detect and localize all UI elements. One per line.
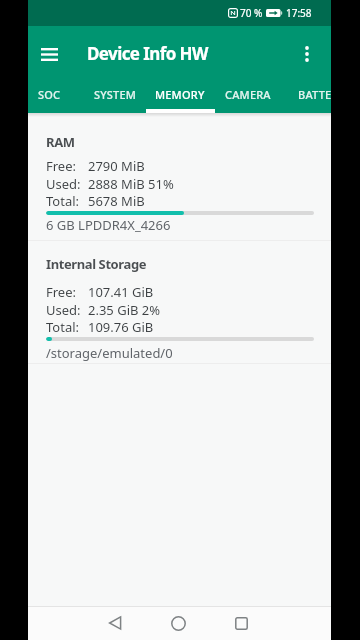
staticText: 2888 MiB 51%	[88, 175, 174, 193]
staticText: 5678 MiB	[88, 192, 145, 210]
staticText: 107.41 GiB	[88, 283, 154, 301]
button[interactable]	[33, 38, 65, 70]
button[interactable]	[162, 607, 194, 639]
button[interactable]: MEMORY	[135, 78, 225, 110]
staticText: Used:	[46, 175, 81, 193]
staticText: 6 GB LPDDR4X_4266	[46, 216, 171, 234]
button[interactable]: CAMERA	[203, 78, 293, 110]
button[interactable]	[99, 607, 131, 639]
staticText: Total:	[46, 318, 80, 336]
staticText: Device Info HW	[87, 42, 208, 65]
staticText: SYSTEM	[94, 87, 137, 102]
staticText: Total:	[46, 192, 80, 210]
button[interactable]: SOC	[28, 78, 94, 110]
button[interactable]	[225, 607, 257, 639]
staticText: Internal Storage	[46, 255, 147, 273]
button[interactable]	[293, 40, 321, 68]
staticText: Free:	[46, 157, 77, 175]
button[interactable]: SYSTEM	[70, 78, 160, 110]
staticText: 2790 MiB	[88, 157, 145, 175]
staticText: BATTERY	[298, 87, 331, 102]
staticText: Free:	[46, 283, 77, 301]
button[interactable]: BATTERY	[277, 78, 331, 110]
staticText: CAMERA	[225, 87, 271, 102]
staticText: RAM	[46, 133, 75, 151]
staticText: 109.76 GiB	[88, 318, 154, 336]
staticText: 2.35 GiB 2%	[88, 301, 161, 319]
staticText: Used:	[46, 301, 81, 319]
staticText: MEMORY	[155, 87, 205, 102]
staticText: SOC	[38, 87, 61, 102]
staticText: 70 %	[240, 6, 263, 20]
staticText: 17:58	[286, 6, 312, 20]
staticText: /storage/emulated/0	[46, 344, 173, 362]
